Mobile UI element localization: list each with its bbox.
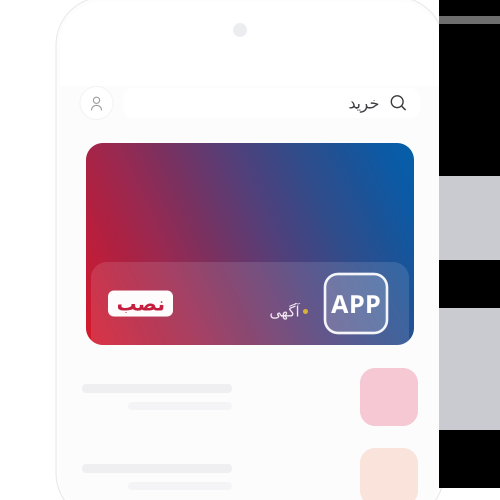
staticText: APP — [331, 287, 381, 320]
staticText: آگهی — [269, 303, 299, 320]
staticText: خرید — [348, 94, 379, 112]
button[interactable]: خرید — [123, 88, 420, 118]
button[interactable]: Profile — [80, 86, 113, 119]
button[interactable] — [82, 357, 418, 437]
button[interactable] — [82, 437, 418, 500]
staticText: نصب — [116, 292, 165, 315]
button[interactable]: نصب — [108, 290, 173, 316]
